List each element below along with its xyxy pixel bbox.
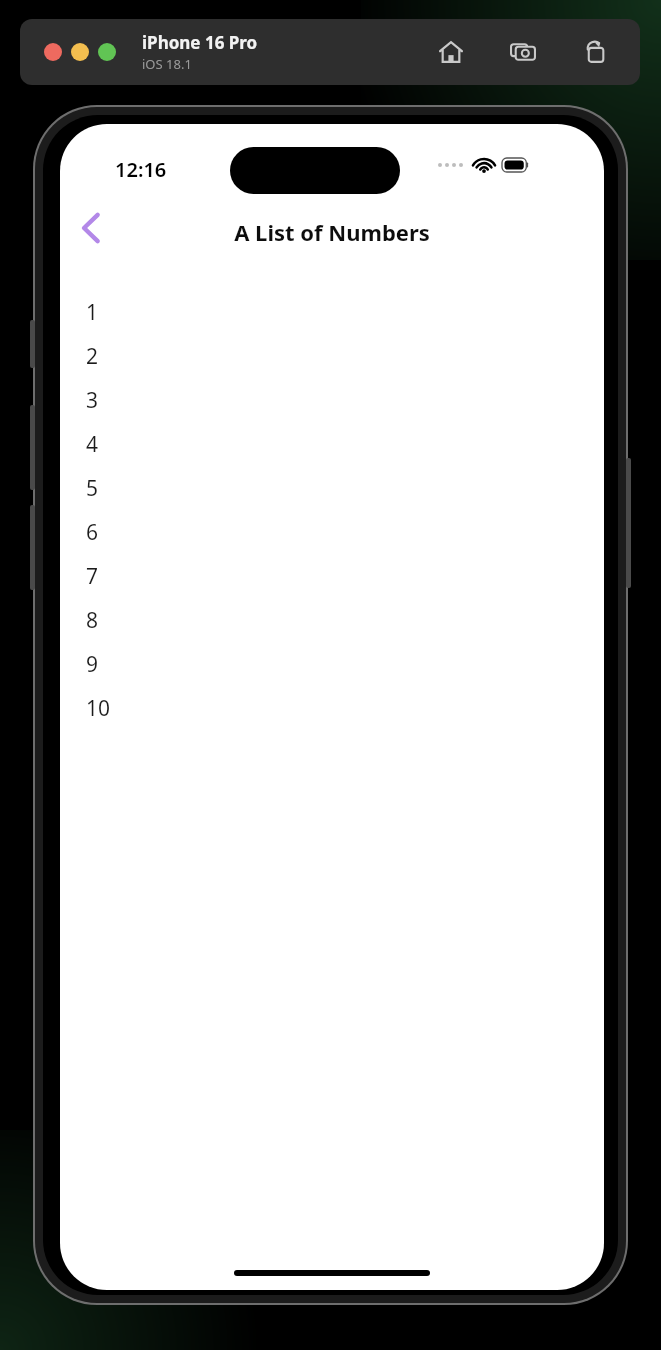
staticText: 10	[86, 694, 111, 723]
button[interactable]: 8	[60, 598, 604, 642]
button[interactable]: Close	[44, 43, 62, 61]
button[interactable]: 9	[60, 642, 604, 686]
staticText: 6	[86, 518, 99, 547]
button[interactable]: 4	[60, 422, 604, 466]
staticText: 7	[86, 562, 99, 591]
staticText: 8	[86, 606, 99, 635]
button[interactable]: 2	[60, 334, 604, 378]
staticText: A List of Numbers	[60, 217, 604, 247]
staticText: 9	[86, 650, 99, 679]
button[interactable]: 6	[60, 510, 604, 554]
button[interactable]: Screenshot	[506, 35, 540, 69]
staticText: 2	[86, 342, 99, 371]
button[interactable]: Home	[434, 35, 468, 69]
staticText: 1	[86, 298, 99, 327]
button[interactable]: 10	[60, 686, 604, 730]
button[interactable]: 7	[60, 554, 604, 598]
staticText: 5	[86, 474, 99, 503]
button[interactable]: Back	[66, 204, 114, 252]
staticText: 3	[86, 386, 99, 415]
button[interactable]: 3	[60, 378, 604, 422]
button[interactable]: Zoom	[98, 43, 116, 61]
button[interactable]: 5	[60, 466, 604, 510]
staticText: iPhone 16 Pro	[142, 31, 258, 54]
staticText: 12:16	[115, 156, 167, 183]
button[interactable]: Rotate	[578, 35, 612, 69]
button[interactable]: Minimize	[71, 43, 89, 61]
staticText: 4	[86, 430, 99, 459]
button[interactable]: 1	[60, 290, 604, 334]
staticText: iOS 18.1	[142, 55, 192, 73]
